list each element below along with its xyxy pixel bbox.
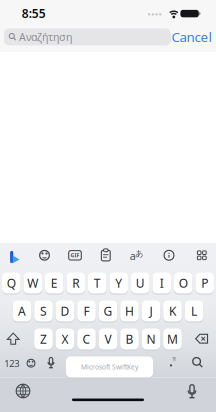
button[interactable]: 123 [4,357,19,369]
button[interactable]: Microsoft SwiftKey [66,356,153,378]
staticText: B [125,331,133,347]
button[interactable]: V [99,328,117,350]
staticText: E [51,275,58,291]
staticText: G [103,303,112,319]
staticText: A [18,303,26,319]
button[interactable]: X [56,328,74,350]
button[interactable] [100,249,111,261]
staticText: R [72,275,79,291]
staticText: U [136,275,145,291]
staticText: C [82,331,90,347]
button[interactable] [192,357,203,368]
button[interactable]: C [77,328,96,350]
button[interactable] [46,357,56,368]
staticText: 8:55 [22,5,46,21]
button[interactable]: GIF [69,251,81,260]
button[interactable] [15,383,30,398]
button[interactable]: Αναζήτηση [4,28,171,45]
button[interactable] [39,250,50,261]
staticText: X [61,331,68,347]
staticText: W [27,275,38,291]
staticText: H [125,303,134,319]
button[interactable] [9,251,20,263]
staticText: O [179,275,188,291]
button[interactable]: G [99,300,117,322]
button[interactable]: J [142,300,160,322]
staticText: S [40,303,47,319]
button[interactable]: F [77,300,96,322]
staticText: Microsoft SwiftKey [81,363,138,371]
button[interactable]: Y [109,272,128,294]
staticText: N [146,331,155,347]
button[interactable]: K [163,300,182,322]
button[interactable]: U [131,272,149,294]
button[interactable]: Z [34,328,53,350]
button[interactable]: Cancel [171,28,211,46]
button[interactable]: A [13,300,31,322]
staticText: Q [7,275,16,291]
button[interactable]: S [34,300,53,322]
staticText: 123 [4,357,19,369]
staticText: K [169,303,176,319]
button[interactable]: B [120,328,139,350]
button[interactable]: D [56,300,74,322]
button[interactable]: W [23,272,42,294]
button[interactable]: E [45,272,63,294]
staticText: Z [40,331,47,347]
button[interactable] [26,358,36,368]
button[interactable] [195,334,208,344]
button[interactable]: P [195,272,214,294]
button[interactable]: O [174,272,192,294]
staticText: J [149,303,152,319]
staticText: D [60,303,69,319]
button[interactable]: M [163,328,182,350]
staticText: あ [135,249,143,259]
staticText: I [160,275,164,291]
button[interactable]: H [120,300,139,322]
staticText: F [83,303,89,319]
button[interactable] [185,384,199,398]
button[interactable] [164,250,174,260]
button[interactable]: ?! [166,357,178,367]
staticText: Cancel [171,28,211,46]
staticText: T [94,275,101,291]
button[interactable]: R [66,272,85,294]
staticText: Αναζήτηση [19,30,72,44]
button[interactable]: N [142,328,160,350]
staticText: ?! [172,356,175,363]
button[interactable]: Q [2,272,20,294]
staticText: GIF [70,252,79,259]
button[interactable]: T [88,272,106,294]
staticText: M [167,331,178,347]
button[interactable] [7,332,20,345]
button[interactable]: I [152,272,171,294]
staticText: P [201,275,208,291]
staticText: L [191,303,197,319]
button[interactable]: L [185,300,203,322]
button[interactable]: a [130,249,143,261]
staticText: V [104,331,111,347]
button[interactable] [197,250,207,260]
staticText: Y [115,275,122,291]
staticText: a [130,249,136,263]
